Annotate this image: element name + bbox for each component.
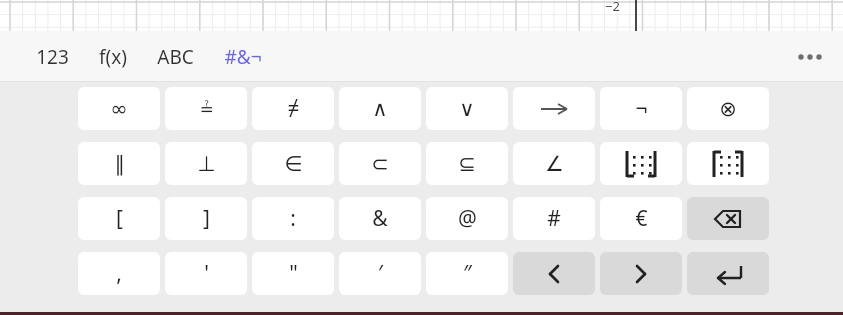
button[interactable]: ∠ bbox=[513, 142, 595, 185]
button[interactable]: Backspace bbox=[687, 197, 769, 240]
staticText: ≠ bbox=[287, 94, 300, 123]
staticText: ⊂ bbox=[371, 152, 389, 176]
staticText: ″ bbox=[463, 259, 472, 288]
button[interactable]: ¬ bbox=[600, 87, 682, 130]
staticText: ' bbox=[204, 259, 209, 288]
button[interactable]: # bbox=[513, 197, 595, 240]
button[interactable]: " bbox=[252, 252, 334, 295]
staticText: @ bbox=[458, 204, 477, 233]
button[interactable]: : bbox=[252, 197, 334, 240]
button[interactable]: [ bbox=[78, 197, 160, 240]
button[interactable]: ∨ bbox=[426, 87, 508, 130]
button[interactable]: ⊆ bbox=[426, 142, 508, 185]
staticText: ABC bbox=[157, 44, 194, 70]
button[interactable]: @ bbox=[426, 197, 508, 240]
staticText: € bbox=[635, 204, 648, 233]
button[interactable]: € bbox=[600, 197, 682, 240]
button[interactable]: ∥ bbox=[78, 142, 160, 185]
button[interactable]: ⊗ bbox=[687, 87, 769, 130]
button[interactable]: , bbox=[78, 252, 160, 295]
button[interactable]: ∞ bbox=[78, 87, 160, 130]
button[interactable]: & bbox=[339, 197, 421, 240]
staticText: [ bbox=[116, 204, 123, 233]
staticText: & bbox=[372, 204, 388, 233]
staticText: ] bbox=[203, 204, 210, 233]
button[interactable]: Enter bbox=[687, 252, 769, 295]
button[interactable]: Implies arrow bbox=[513, 87, 595, 130]
staticText: ⊥ bbox=[197, 152, 216, 176]
button[interactable]: ≠ bbox=[252, 87, 334, 130]
staticText: ∥ bbox=[114, 152, 125, 176]
button[interactable]: Move left bbox=[513, 252, 595, 295]
staticText: ′ bbox=[378, 259, 383, 288]
staticText: ∨ bbox=[459, 97, 475, 121]
button[interactable]: More options bbox=[786, 33, 834, 81]
staticText: ¬ bbox=[635, 94, 648, 123]
button[interactable]: ' bbox=[165, 252, 247, 295]
staticText: 123 bbox=[36, 44, 69, 70]
staticText: # bbox=[547, 204, 561, 233]
button[interactable]: ABC bbox=[149, 38, 202, 76]
staticText: #&¬ bbox=[224, 44, 262, 70]
button[interactable]: ∈ bbox=[252, 142, 334, 185]
staticText: , bbox=[116, 259, 122, 288]
button[interactable]: #&¬ bbox=[216, 38, 270, 76]
staticText: ∠ bbox=[545, 152, 564, 176]
button[interactable]: 123 bbox=[28, 38, 77, 76]
staticText: : bbox=[290, 204, 296, 233]
staticText: f(x) bbox=[99, 44, 127, 70]
button[interactable]: Matrix top brackets bbox=[687, 142, 769, 185]
staticText: ∧ bbox=[372, 97, 388, 121]
staticText: ⊆ bbox=[458, 152, 476, 176]
button[interactable]: Matrix bottom brackets bbox=[600, 142, 682, 185]
button[interactable]: ] bbox=[165, 197, 247, 240]
staticText: ≟ bbox=[199, 99, 214, 119]
staticText: ⊗ bbox=[719, 97, 737, 121]
staticText: ∞ bbox=[110, 97, 128, 121]
button[interactable]: f(x) bbox=[91, 38, 135, 76]
button[interactable]: ″ bbox=[426, 252, 508, 295]
staticText: " bbox=[289, 259, 298, 288]
staticText: ∈ bbox=[284, 152, 303, 176]
button[interactable]: ⊂ bbox=[339, 142, 421, 185]
button[interactable]: ≟ bbox=[165, 87, 247, 130]
button[interactable]: ′ bbox=[339, 252, 421, 295]
button[interactable]: ⊥ bbox=[165, 142, 247, 185]
staticText: −2 bbox=[605, 0, 620, 15]
button[interactable]: Move right bbox=[600, 252, 682, 295]
button[interactable]: ∧ bbox=[339, 87, 421, 130]
